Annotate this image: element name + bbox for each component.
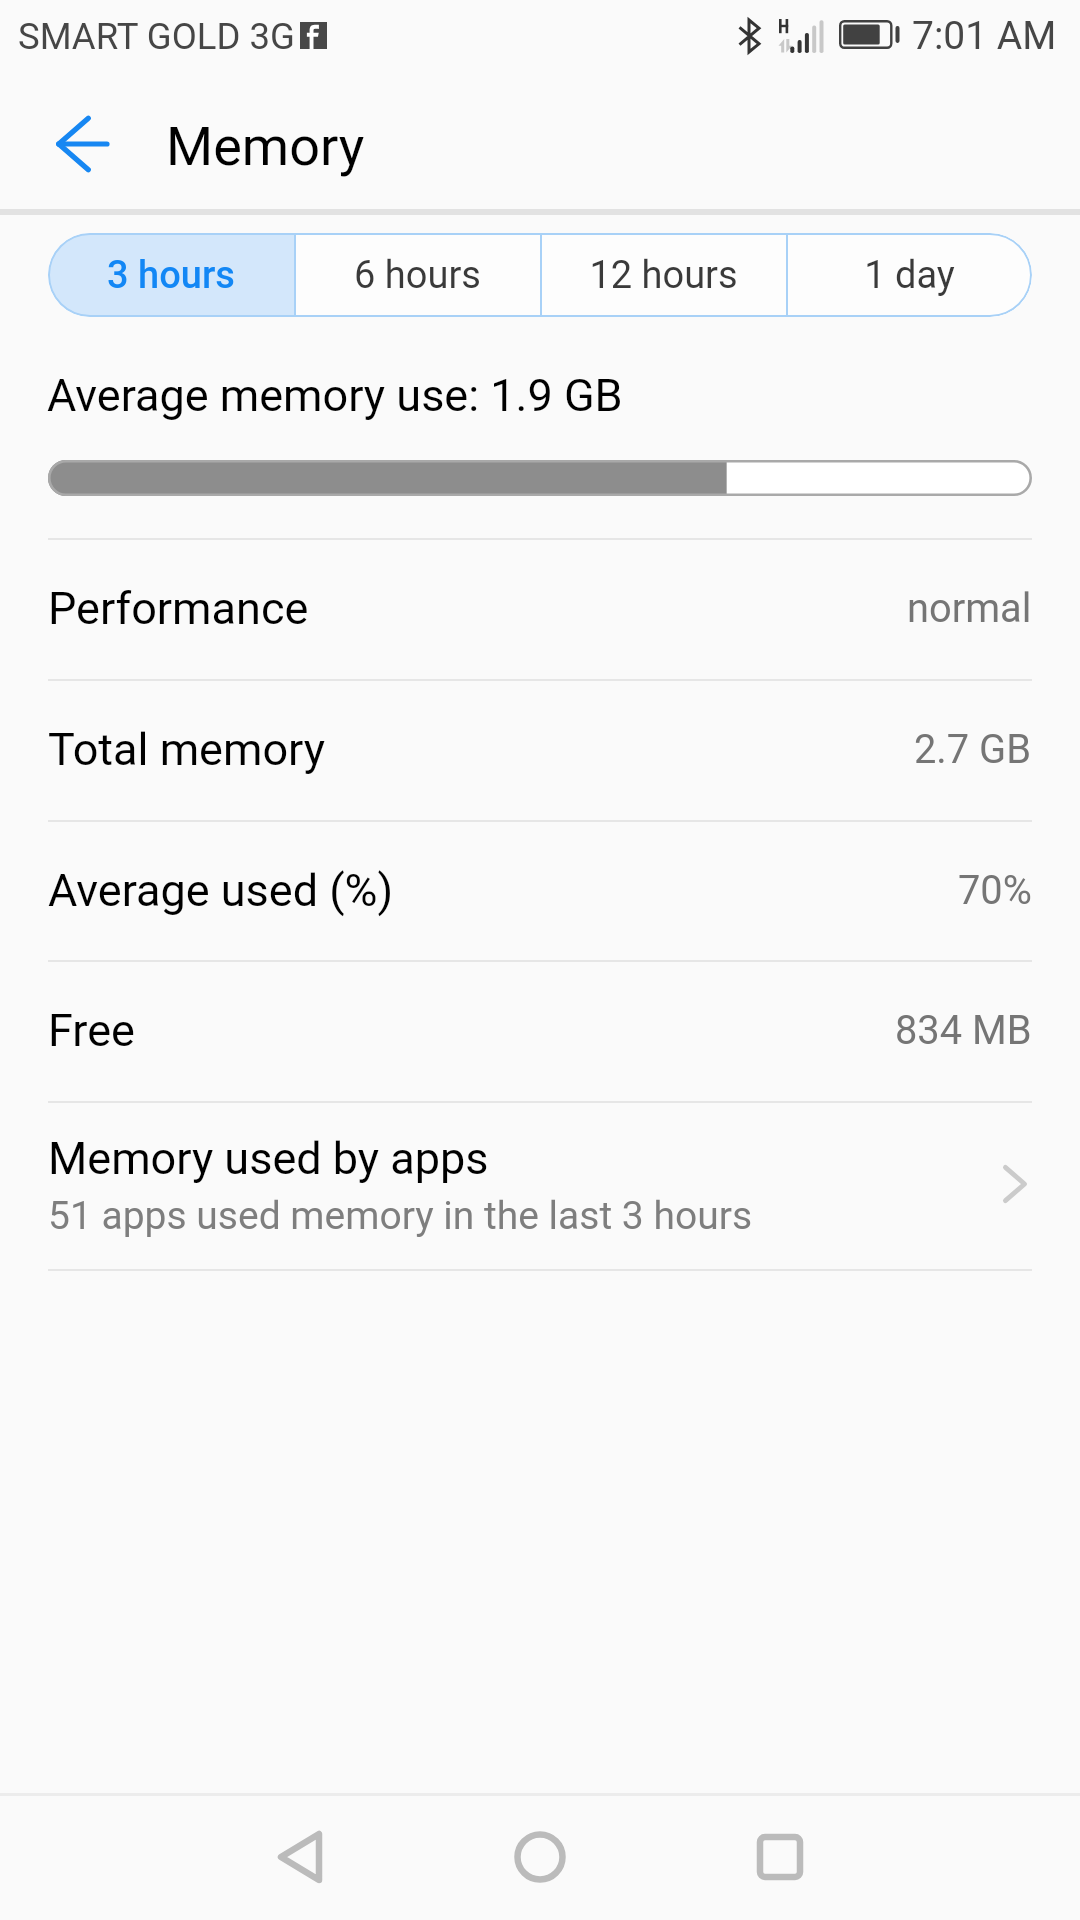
staticText: SMART GOLD 3G bbox=[18, 15, 295, 58]
staticText: Memory bbox=[166, 115, 365, 178]
staticText: Memory used by apps bbox=[48, 1132, 489, 1185]
staticText: Free bbox=[48, 1004, 135, 1057]
staticText: 7:01 AM bbox=[912, 13, 1057, 59]
staticText: Average used (%) bbox=[48, 864, 394, 917]
button[interactable]: Total memory bbox=[0, 679, 1080, 820]
staticText: 70% bbox=[958, 867, 1032, 914]
button[interactable]: Recent apps bbox=[690, 1793, 870, 1920]
staticText: 834 MB bbox=[895, 1007, 1032, 1054]
staticText: 12 hours bbox=[589, 253, 738, 298]
button[interactable]: Performance bbox=[0, 538, 1080, 679]
staticText: Performance bbox=[48, 582, 309, 635]
button[interactable]: 6 hours bbox=[294, 233, 540, 317]
staticText: 51 apps used memory in the last 3 hours bbox=[48, 1193, 753, 1239]
button[interactable]: Back bbox=[210, 1793, 390, 1920]
button[interactable]: Free bbox=[0, 960, 1080, 1101]
staticText: 3 hours bbox=[107, 253, 235, 298]
staticText: normal bbox=[907, 585, 1032, 632]
button[interactable]: Home bbox=[450, 1793, 630, 1920]
staticText: Average memory use: 1.9 GB bbox=[47, 369, 623, 422]
button[interactable]: Average used (%) bbox=[0, 820, 1080, 961]
button[interactable]: 1 day bbox=[786, 233, 1032, 317]
button[interactable]: Navigate up bbox=[29, 87, 143, 201]
button[interactable]: 3 hours bbox=[48, 233, 294, 317]
staticText: 6 hours bbox=[354, 253, 481, 298]
button[interactable]: 12 hours bbox=[540, 233, 786, 317]
staticText: Total memory bbox=[48, 723, 326, 776]
staticText: 1 day bbox=[864, 253, 955, 298]
button[interactable]: Memory used by apps bbox=[0, 1101, 1080, 1269]
staticText: 2.7 GB bbox=[914, 726, 1032, 773]
